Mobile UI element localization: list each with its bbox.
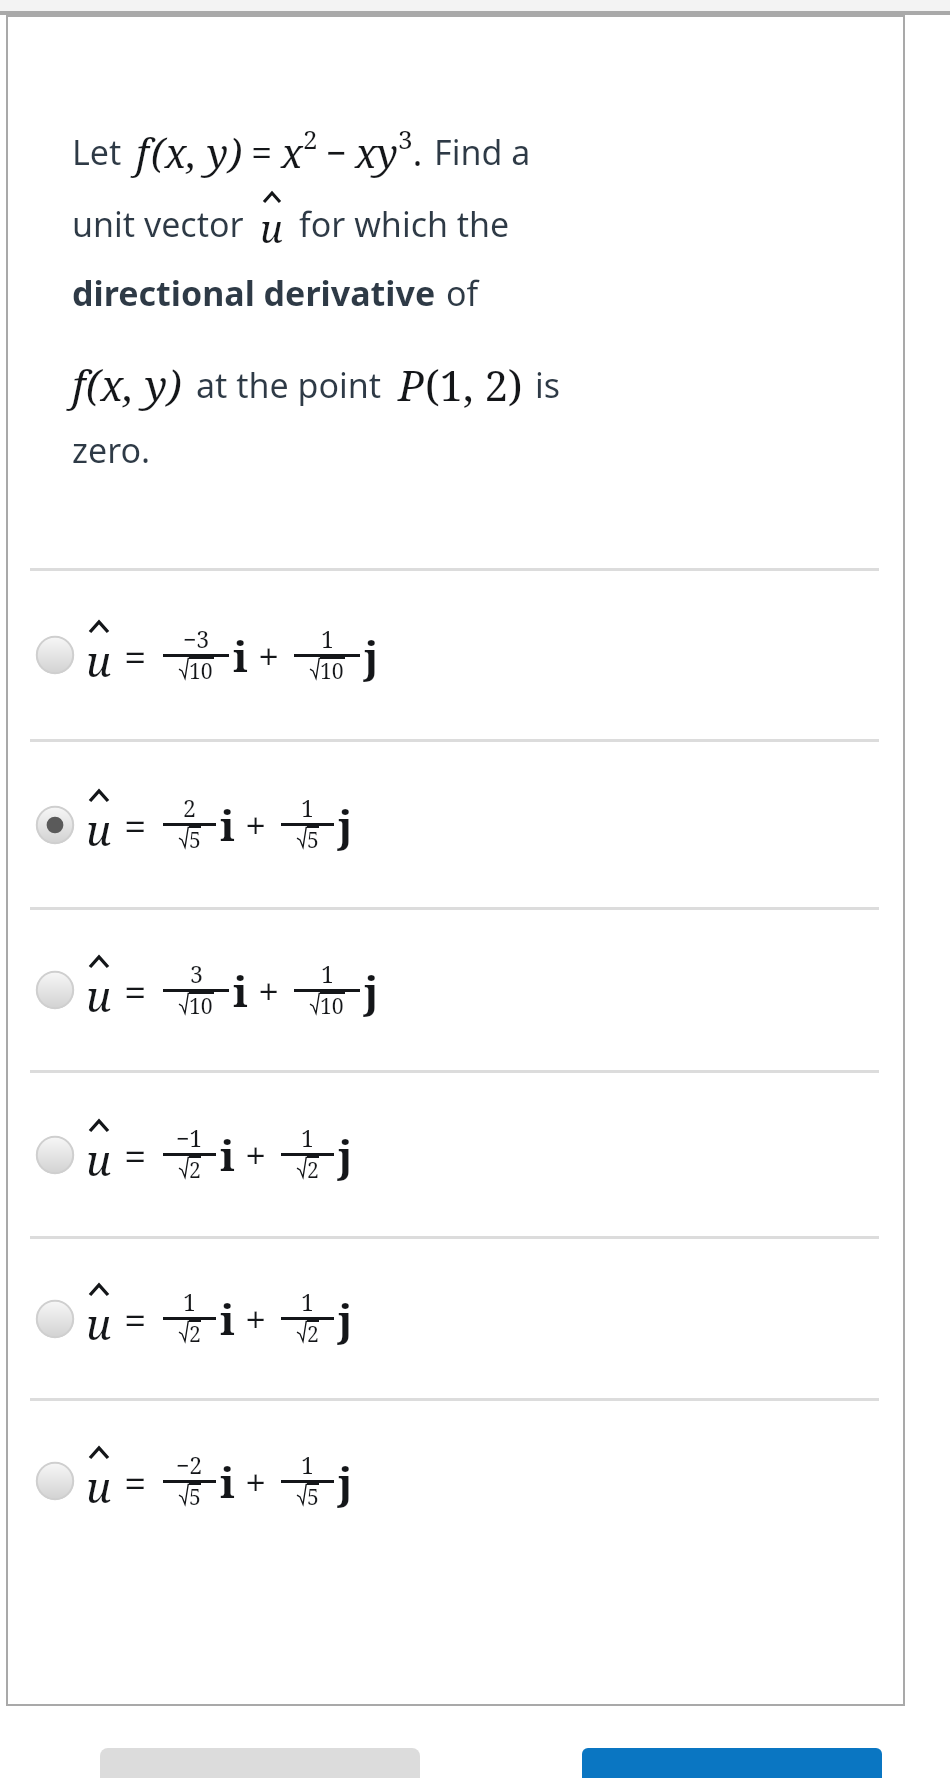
- staticText: .: [413, 128, 422, 177]
- staticText: j: [364, 627, 379, 684]
- staticText: i: [220, 796, 235, 853]
- staticText: 5: [189, 1482, 201, 1511]
- staticText: zero.: [72, 427, 151, 473]
- staticText: f: [72, 356, 86, 413]
- staticText: i: [220, 1290, 235, 1347]
- staticText: u: [86, 1458, 112, 1515]
- staticText: 2: [307, 1319, 319, 1348]
- staticText: =: [251, 126, 273, 178]
- staticText: 10: [320, 991, 344, 1020]
- staticText: =: [124, 629, 147, 683]
- staticText: P: [398, 356, 425, 413]
- staticText: 10: [189, 656, 213, 685]
- staticText: =: [124, 798, 147, 852]
- staticText: −2: [176, 1449, 203, 1480]
- staticText: is: [535, 362, 561, 408]
- staticText: 3: [190, 958, 203, 989]
- staticText: 1: [301, 792, 314, 823]
- staticText: (x, y): [86, 356, 182, 413]
- staticText: 1: [183, 1286, 196, 1317]
- staticText: u: [86, 632, 112, 689]
- other: Selected answer: [34, 804, 76, 846]
- button[interactable]: Answer option: [6, 910, 905, 1070]
- staticText: −: [326, 128, 347, 177]
- staticText: 2: [303, 121, 318, 156]
- button[interactable]: Answer option: [6, 571, 905, 739]
- staticText: 1: [301, 1286, 314, 1317]
- staticText: xy: [355, 125, 398, 179]
- staticText: i: [233, 962, 248, 1019]
- staticText: j: [338, 796, 353, 853]
- staticText: +: [258, 630, 280, 682]
- other: Answer option: [34, 1298, 76, 1340]
- button[interactable]: Answer option: [6, 1401, 905, 1561]
- button[interactable]: Submit: [582, 1748, 882, 1778]
- staticText: 2: [189, 1319, 201, 1348]
- staticText: Find a: [434, 129, 531, 175]
- staticText: 10: [189, 991, 213, 1020]
- other: Answer option: [34, 969, 76, 1011]
- other: Answer option: [34, 1134, 76, 1176]
- button[interactable]: Answer option: [6, 1073, 905, 1236]
- staticText: x: [281, 125, 303, 179]
- staticText: (x, y): [151, 125, 243, 179]
- staticText: +: [245, 799, 267, 851]
- staticText: 10: [320, 656, 344, 685]
- staticText: at the point: [196, 362, 382, 408]
- staticText: 1: [301, 1449, 314, 1480]
- staticText: +: [245, 1129, 267, 1181]
- staticText: f: [136, 125, 149, 179]
- staticText: 1: [321, 623, 334, 654]
- staticText: 2: [183, 792, 196, 823]
- staticText: 2: [307, 1155, 319, 1184]
- staticText: u: [86, 1295, 112, 1352]
- staticText: 1: [321, 958, 334, 989]
- staticText: j: [338, 1126, 353, 1183]
- staticText: +: [245, 1293, 267, 1345]
- staticText: −1: [176, 1122, 203, 1153]
- staticText: j: [364, 962, 379, 1019]
- staticText: +: [245, 1456, 267, 1508]
- staticText: i: [233, 627, 248, 684]
- staticText: u: [260, 202, 283, 254]
- button[interactable]: Selected answer: [6, 742, 905, 907]
- staticText: u: [86, 967, 112, 1024]
- staticText: 5: [307, 1482, 319, 1511]
- staticText: +: [258, 965, 280, 1017]
- other: Answer option: [34, 634, 76, 676]
- staticText: 5: [189, 825, 201, 854]
- staticText: directional derivative: [72, 270, 436, 316]
- staticText: =: [124, 964, 147, 1018]
- staticText: =: [124, 1292, 147, 1346]
- staticText: −3: [183, 623, 210, 654]
- staticText: 2: [189, 1155, 201, 1184]
- staticText: =: [124, 1455, 147, 1509]
- staticText: Let: [72, 129, 122, 175]
- button[interactable]: Answer option: [6, 1239, 905, 1398]
- staticText: j: [338, 1453, 353, 1510]
- staticText: 3: [398, 121, 413, 156]
- staticText: i: [220, 1453, 235, 1510]
- staticText: 5: [307, 825, 319, 854]
- staticText: u: [86, 801, 112, 858]
- staticText: of: [446, 270, 479, 316]
- staticText: 1: [301, 1122, 314, 1153]
- staticText: unit vector: [72, 201, 244, 247]
- staticText: j: [338, 1290, 353, 1347]
- staticText: i: [220, 1126, 235, 1183]
- staticText: =: [124, 1128, 147, 1182]
- staticText: (1, 2): [425, 356, 523, 413]
- staticText: u: [86, 1131, 112, 1188]
- other: Answer option: [34, 1460, 76, 1502]
- staticText: for which the: [299, 201, 510, 247]
